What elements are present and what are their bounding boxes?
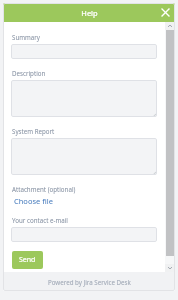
staticText: Help bbox=[81, 8, 98, 18]
staticText: Your contact e-mail bbox=[12, 216, 68, 224]
staticText: Description bbox=[12, 69, 46, 77]
button[interactable]: Text field bbox=[11, 227, 157, 242]
button[interactable]: Close bbox=[156, 3, 175, 22]
button[interactable]: Choose file bbox=[14, 195, 53, 207]
staticText: Powered by Jira Service Desk bbox=[48, 278, 131, 286]
button[interactable]: Send bbox=[12, 251, 43, 269]
button[interactable]: Text field bbox=[11, 138, 157, 175]
staticText: Choose file bbox=[14, 196, 53, 206]
button[interactable]: Text field bbox=[11, 80, 157, 117]
button[interactable]: Scroll down bbox=[165, 264, 175, 272]
staticText: System Report bbox=[12, 127, 55, 135]
staticText: Send bbox=[19, 255, 36, 265]
button[interactable]: Scroll up bbox=[165, 22, 175, 30]
staticText: Attachment (optional) bbox=[12, 185, 76, 193]
staticText: Summary bbox=[12, 33, 40, 41]
button[interactable]: Text field bbox=[11, 44, 157, 59]
